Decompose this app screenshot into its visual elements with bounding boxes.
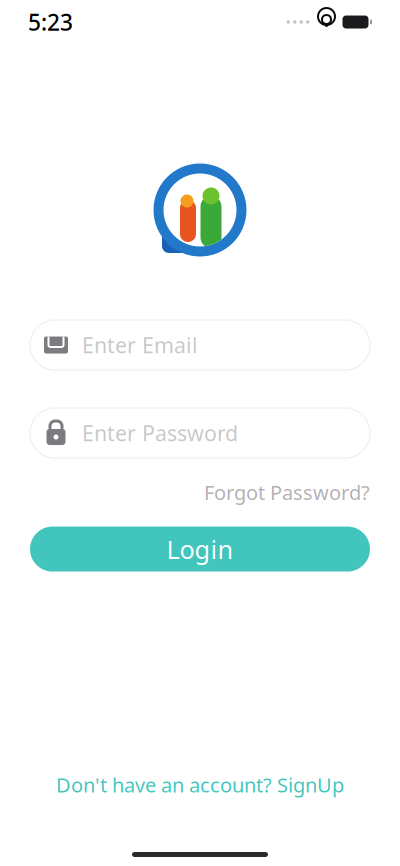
button[interactable]: Don't have an account? SignUp <box>42 765 358 804</box>
staticText: Don't have an account? SignUp <box>56 771 344 798</box>
staticText: Enter Email <box>82 331 198 359</box>
staticText: Enter Password <box>82 419 238 447</box>
staticText: Login <box>166 532 233 566</box>
button[interactable]: Enter Password <box>0 408 400 458</box>
staticText: Forgot Password? <box>204 479 370 506</box>
staticText: 5:23 <box>28 7 73 37</box>
button[interactable]: Login <box>30 527 370 572</box>
button[interactable]: Forgot Password? <box>204 474 370 511</box>
button[interactable]: Enter Email <box>0 320 400 370</box>
